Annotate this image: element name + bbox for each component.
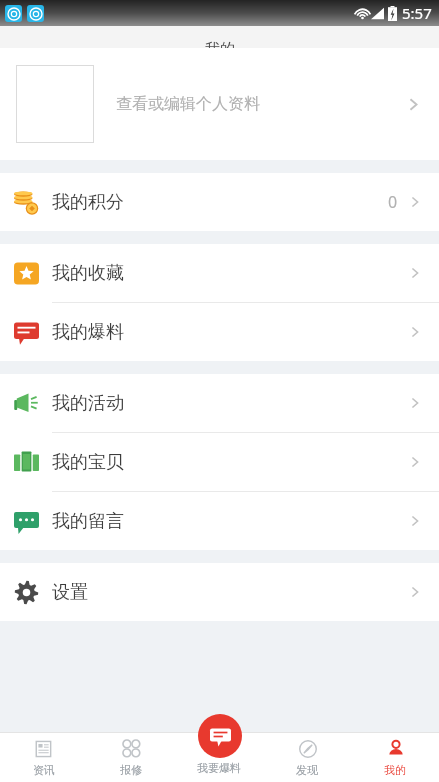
staticText: 报修 — [120, 763, 142, 777]
button[interactable]: 我的爆料 — [0, 303, 439, 361]
staticText: 我的宝贝 — [52, 451, 124, 474]
staticText: 我的爆料 — [52, 321, 124, 344]
button[interactable]: 资讯 — [0, 732, 87, 782]
staticText: 我的留言 — [52, 510, 124, 533]
staticText: 我的积分 — [52, 191, 124, 214]
staticText: 发现 — [296, 763, 318, 777]
staticText: 我的收藏 — [52, 262, 124, 285]
button[interactable]: 我的 — [351, 732, 439, 782]
staticText: 0 — [388, 191, 398, 213]
button[interactable]: 我要爆料 — [175, 732, 263, 782]
staticText: 5:57 — [402, 3, 432, 23]
staticText: 设置 — [52, 581, 88, 604]
button[interactable]: 设置 — [0, 563, 439, 621]
button[interactable]: 发现 — [263, 732, 351, 782]
staticText: 我要爆料 — [197, 761, 241, 775]
button[interactable]: 查看或编辑个人资料 — [0, 48, 439, 160]
button[interactable]: 我的积分 — [0, 173, 439, 231]
button[interactable]: 我的留言 — [0, 492, 439, 550]
button[interactable]: 我的宝贝 — [0, 433, 439, 491]
staticText: 资讯 — [33, 763, 55, 777]
staticText: 查看或编辑个人资料 — [116, 94, 260, 114]
button[interactable]: 报修 — [87, 732, 175, 782]
staticText: 我的活动 — [52, 392, 124, 415]
staticText: 我的 — [384, 763, 406, 777]
staticText: 我的 — [205, 40, 235, 59]
button[interactable]: 我要爆料 — [198, 714, 242, 758]
button[interactable]: 我的活动 — [0, 374, 439, 432]
button[interactable]: 我的收藏 — [0, 244, 439, 302]
